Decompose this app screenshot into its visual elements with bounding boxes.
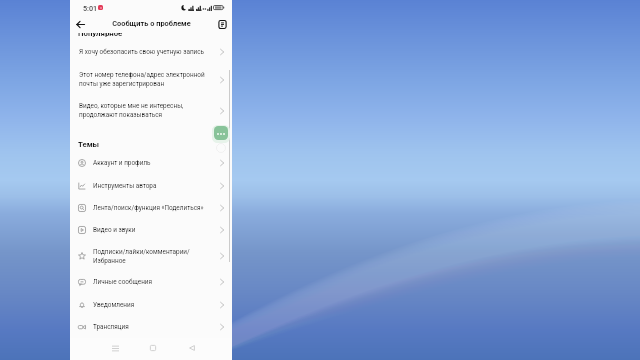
button[interactable]: Этот номер телефона/адрес электронной по… [70,68,232,90]
button[interactable]: Трансляция [70,317,232,337]
staticText: Подписки/лайки/комментарии/ Избранное [93,248,214,264]
button[interactable]: Home [145,340,161,356]
staticText: Видео и звуки [93,226,214,234]
staticText: Видео, которые мне не интересны, продолж… [79,102,211,119]
staticText: Я хочу обезопасить свою учетную запись [79,48,211,56]
button[interactable]: Аккаунт и профиль [70,153,232,173]
button[interactable]: Инструменты автора [70,176,232,196]
staticText: 5:01 [83,4,98,12]
button[interactable]: Уведомления [70,295,232,315]
staticText: Лента/поиск/функция «Поделиться» [93,204,214,212]
staticText: Этот номер телефона/адрес электронной по… [79,71,211,88]
button[interactable]: Я хочу обезопасить свою учетную запись [70,41,232,63]
button[interactable]: My reports [215,17,229,31]
button[interactable]: Личные сообщения [70,272,232,292]
button[interactable]: Лента/поиск/функция «Поделиться» [70,198,232,218]
staticText: Уведомления [93,301,214,309]
staticText: Темы [78,140,100,149]
staticText: Трансляция [93,323,214,331]
button[interactable]: Chat with support [214,126,228,140]
button[interactable]: Видео, которые мне не интересны, продолж… [70,99,232,121]
staticText: Инструменты автора [93,182,214,190]
staticText: Аккаунт и профиль [93,159,214,167]
staticText: Личные сообщения [93,278,214,286]
button[interactable]: Видео и звуки [70,220,232,240]
button[interactable]: Back [184,340,200,356]
button[interactable]: Back [73,17,87,31]
button[interactable]: Recent apps [107,340,123,356]
button[interactable]: Подписки/лайки/комментарии/ Избранное [70,246,232,266]
staticText: Сообщить о проблеме [112,19,191,28]
staticText: Популярное [78,29,123,38]
